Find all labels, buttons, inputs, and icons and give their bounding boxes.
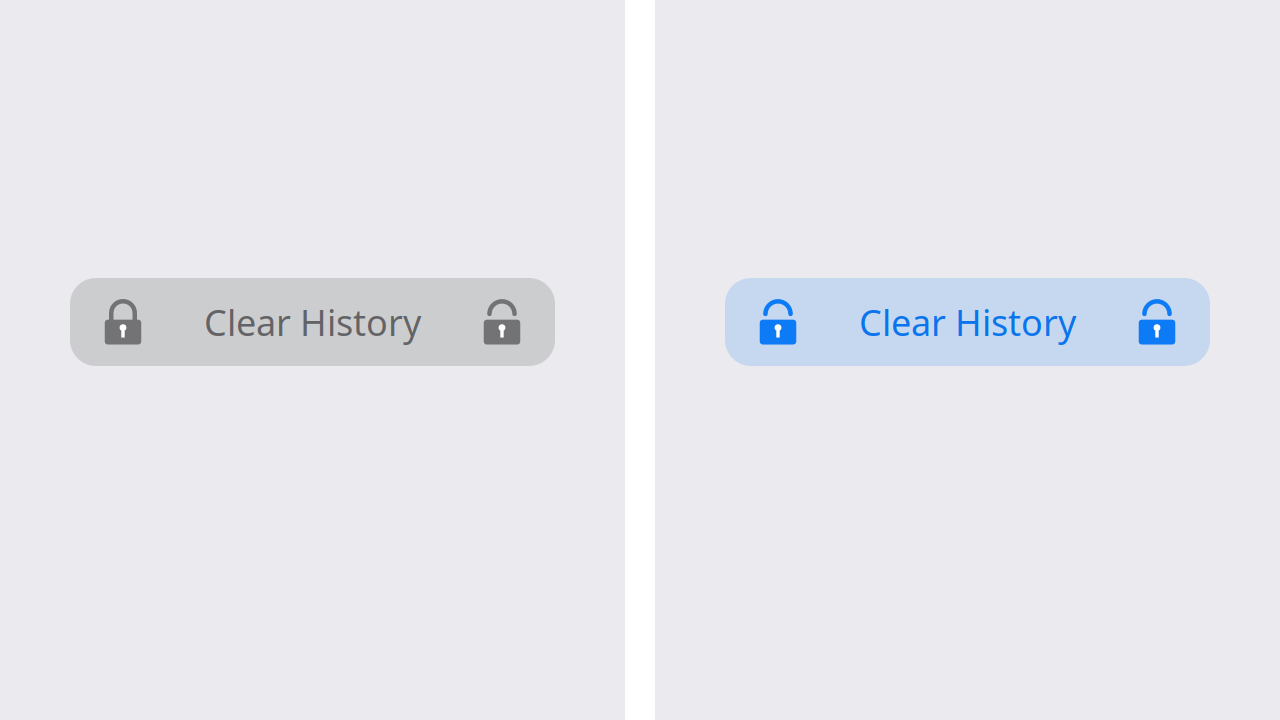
button[interactable]: Clear History bbox=[70, 278, 555, 366]
staticText: Clear History bbox=[204, 298, 421, 346]
button[interactable]: Clear History bbox=[725, 278, 1210, 366]
staticText: Clear History bbox=[859, 298, 1076, 346]
